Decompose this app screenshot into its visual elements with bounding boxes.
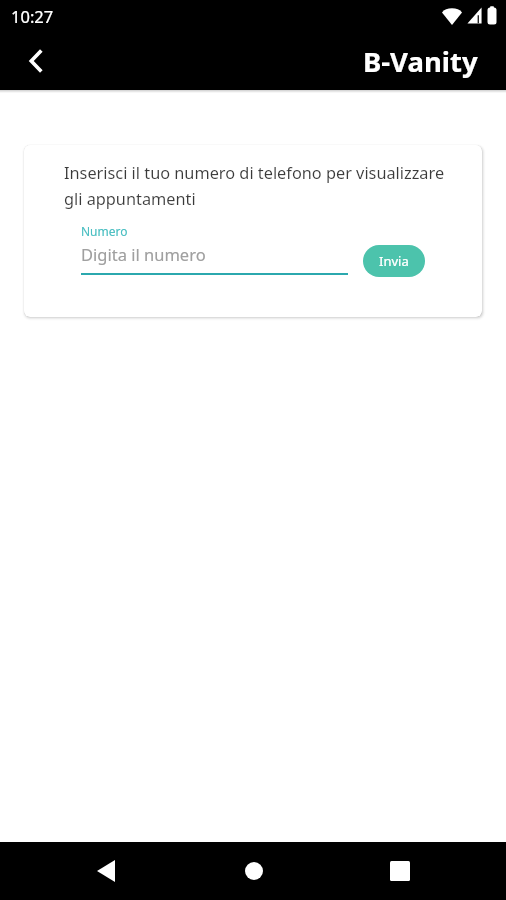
staticText: Digita il numero bbox=[81, 243, 206, 265]
button[interactable]: Home bbox=[231, 848, 277, 894]
button[interactable]: Back bbox=[83, 848, 129, 894]
button[interactable]: Invia bbox=[363, 245, 425, 277]
button[interactable]: Back bbox=[13, 38, 59, 84]
staticText: Inserisci il tuo numero di telefono per … bbox=[64, 162, 445, 209]
button[interactable]: Digita il numero bbox=[81, 243, 348, 275]
staticText: B-Vanity bbox=[363, 43, 478, 80]
staticText: Invia bbox=[379, 252, 409, 270]
staticText: 10:27 bbox=[11, 5, 54, 27]
staticText: Numero bbox=[81, 223, 128, 239]
button[interactable]: Recent apps bbox=[377, 848, 423, 894]
